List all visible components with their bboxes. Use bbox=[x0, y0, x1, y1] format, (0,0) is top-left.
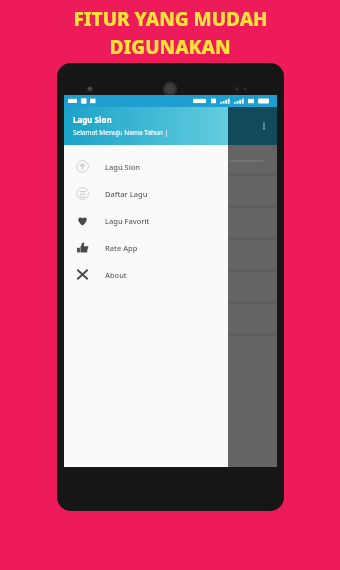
button[interactable]: Lagu Sion bbox=[64, 107, 228, 145]
button[interactable]: Daftar Lagu bbox=[64, 180, 228, 207]
staticText: Rate App bbox=[105, 243, 138, 253]
button[interactable]: Rate App bbox=[64, 234, 228, 261]
button[interactable]: Lagu Sion bbox=[64, 153, 228, 180]
staticText: Daftar Lagu bbox=[105, 189, 148, 199]
button[interactable]: Lagu Favorit bbox=[64, 207, 228, 234]
staticText: Lagu Sion bbox=[73, 114, 112, 125]
staticText: Selamat Menuju Nama Tahun | bbox=[73, 128, 169, 137]
button[interactable]: About bbox=[64, 261, 228, 288]
staticText: About bbox=[105, 270, 127, 280]
staticText: FITUR YANG MUDAH bbox=[73, 6, 268, 32]
staticText: Lagu Favorit bbox=[105, 216, 150, 226]
staticText: DIGUNAKAN bbox=[109, 34, 231, 60]
staticText: Lagu Sion bbox=[105, 162, 141, 172]
other: More options bbox=[259, 121, 269, 131]
